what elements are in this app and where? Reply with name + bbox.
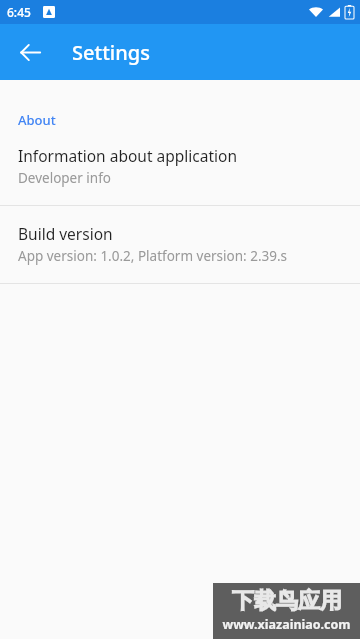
staticText: App version: 1.0.2, Platform version: 2.… <box>18 247 288 265</box>
staticText: www.xiazainiao.com <box>222 616 351 633</box>
staticText: Settings <box>72 39 150 66</box>
staticText: Developer info <box>18 169 111 187</box>
staticText: 6:45 <box>7 4 31 20</box>
staticText: 下载鸟应用 <box>232 587 342 615</box>
staticText: About <box>18 111 56 129</box>
staticText: Build version <box>18 223 113 244</box>
staticText: Information about application <box>18 145 237 166</box>
button[interactable]: Back <box>6 28 54 76</box>
button[interactable]: Information about application <box>0 145 360 187</box>
button[interactable]: Build version <box>0 223 360 265</box>
